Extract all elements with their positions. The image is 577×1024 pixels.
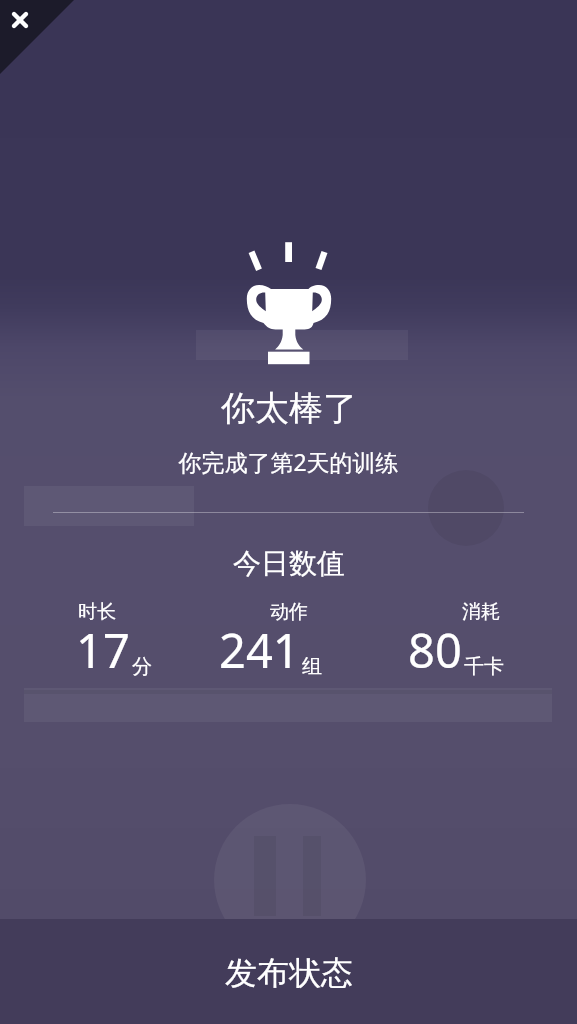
staticText: 发布状态 — [225, 953, 353, 993]
staticText: 千卡 — [464, 654, 504, 679]
button[interactable]: Close — [5, 5, 35, 35]
staticText: 消耗 — [462, 600, 500, 624]
staticText: 组 — [302, 654, 322, 679]
staticText: 你太棒了 — [221, 387, 357, 430]
staticText: 17 — [76, 618, 130, 682]
staticText: 241 — [219, 618, 300, 682]
button[interactable]: 发布状态 — [0, 919, 577, 1024]
staticText: 动作 — [270, 600, 308, 624]
staticText: 你完成了第2天的训练 — [178, 446, 399, 477]
staticText: 分 — [132, 654, 152, 679]
staticText: 今日数值 — [233, 546, 345, 581]
staticText: 时长 — [78, 600, 116, 624]
staticText: 80 — [408, 618, 462, 682]
